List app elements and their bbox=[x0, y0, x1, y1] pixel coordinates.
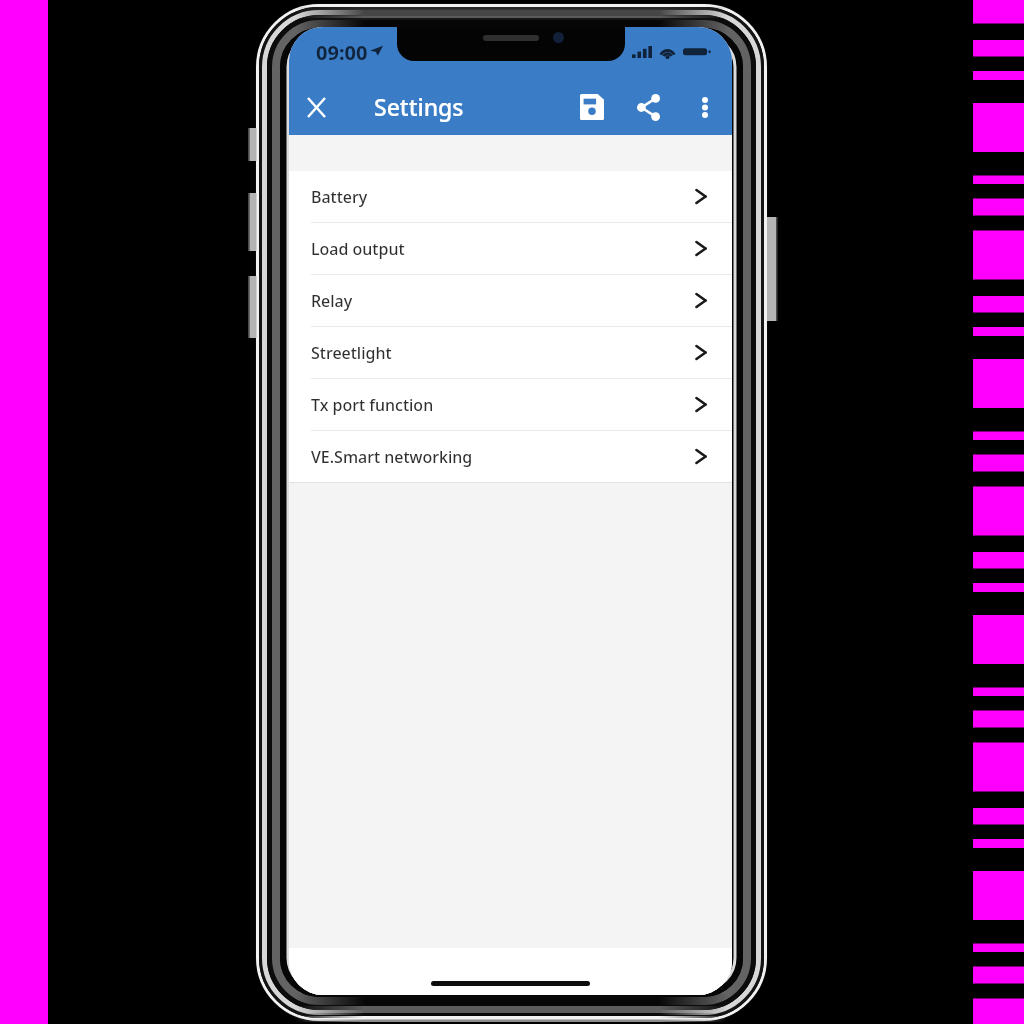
button[interactable]: Close bbox=[296, 87, 337, 128]
button[interactable]: Save bbox=[572, 87, 612, 127]
button[interactable]: Streetlight bbox=[289, 327, 732, 378]
button[interactable]: Load output bbox=[289, 223, 732, 274]
staticText: Load output bbox=[311, 238, 405, 260]
staticText: Relay bbox=[311, 290, 353, 312]
button[interactable]: Tx port function bbox=[289, 379, 732, 430]
staticText: Tx port function bbox=[311, 394, 434, 416]
staticText: VE.Smart networking bbox=[311, 446, 473, 468]
button[interactable]: Battery bbox=[289, 171, 732, 222]
button[interactable]: Share bbox=[628, 87, 668, 127]
button[interactable]: More options bbox=[687, 89, 723, 125]
staticText: Battery bbox=[311, 186, 368, 208]
button[interactable]: Relay bbox=[289, 275, 732, 326]
staticText: 09:00 bbox=[316, 39, 368, 66]
staticText: Streetlight bbox=[311, 342, 392, 364]
button[interactable]: VE.Smart networking bbox=[289, 431, 732, 482]
staticText: Settings bbox=[374, 91, 464, 122]
